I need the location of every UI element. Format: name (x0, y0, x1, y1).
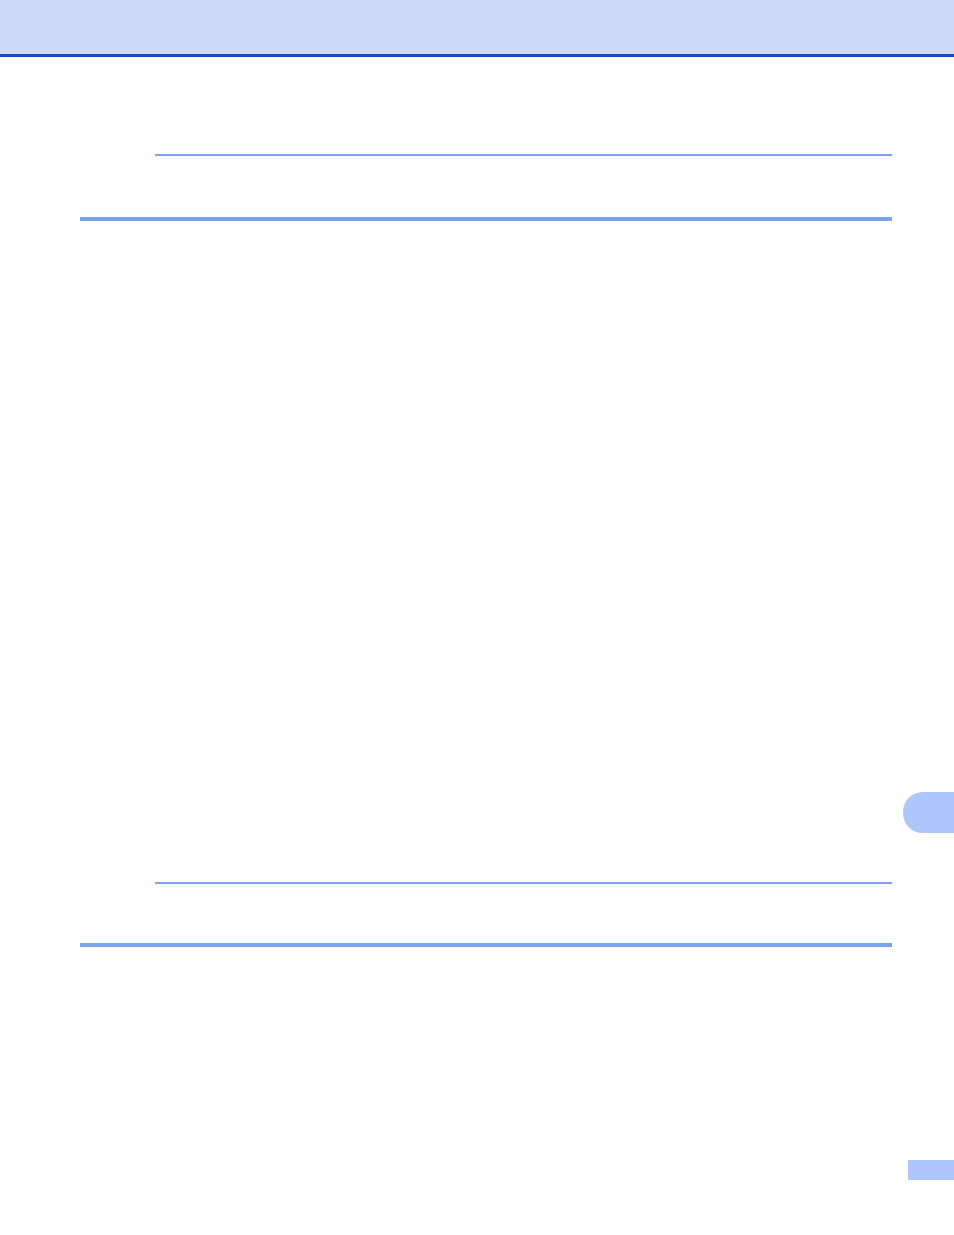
button[interactable]: Page header (0, 0, 954, 57)
button[interactable]: Section tab (903, 792, 954, 833)
